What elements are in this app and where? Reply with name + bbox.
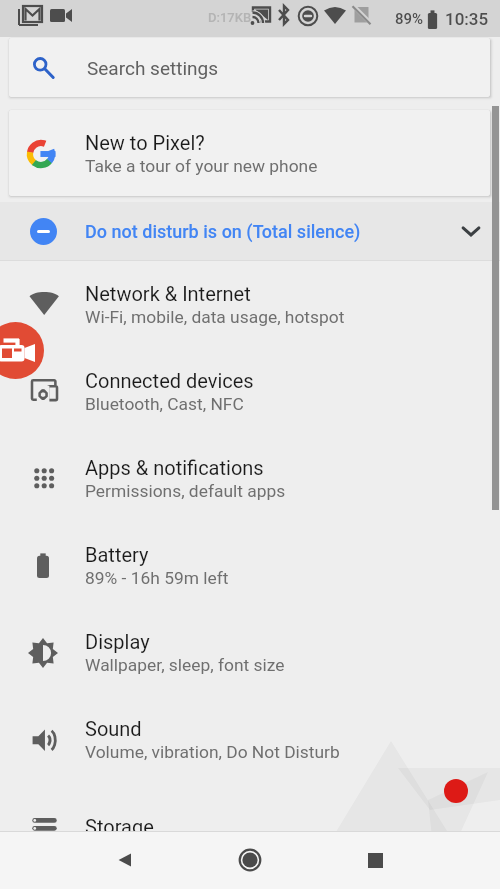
staticText: Wallpaper, sleep, font size — [85, 655, 285, 675]
button[interactable]: Apps & notifications — [0, 435, 500, 522]
button[interactable]: Back — [102, 837, 148, 883]
staticText: Do not disturb is on (Total silence) — [85, 221, 361, 242]
staticText: Volume, vibration, Do Not Disturb — [85, 742, 340, 762]
button[interactable]: Search settings — [9, 38, 490, 97]
staticText: New to Pixel? — [85, 131, 205, 154]
staticText: Battery — [85, 543, 149, 566]
staticText: D:17KB — [208, 10, 252, 25]
staticText: Search settings — [87, 57, 218, 79]
staticText: Wi-Fi, mobile, data usage, hotspot — [85, 307, 345, 327]
button[interactable]: Sound — [0, 696, 500, 783]
staticText: Network & Internet — [85, 282, 251, 305]
staticText: Apps & notifications — [85, 456, 264, 479]
staticText: Take a tour of your new phone — [85, 156, 318, 176]
button[interactable]: Home — [227, 837, 273, 883]
button[interactable]: Expand — [454, 214, 488, 248]
button[interactable]: Battery — [0, 522, 500, 609]
button[interactable]: Recent apps — [352, 837, 398, 883]
button[interactable]: Do not disturb is on (Total silence) — [0, 202, 500, 260]
staticText: Bluetooth, Cast, NFC — [85, 394, 244, 414]
staticText: Sound — [85, 717, 142, 740]
button[interactable]: Storage — [0, 783, 500, 870]
staticText: Permissions, default apps — [85, 481, 286, 501]
button[interactable]: New to Pixel? — [9, 110, 490, 196]
staticText: 10:35 — [445, 9, 489, 29]
staticText: Connected devices — [85, 369, 254, 392]
button[interactable]: Connected devices — [0, 348, 500, 435]
button[interactable]: Display — [0, 609, 500, 696]
button[interactable]: Network & Internet — [0, 261, 500, 348]
staticText: Storage — [85, 815, 154, 838]
staticText: 89% — [395, 10, 424, 28]
staticText: 89% - 16h 59m left — [85, 568, 229, 588]
staticText: Display — [85, 630, 150, 653]
